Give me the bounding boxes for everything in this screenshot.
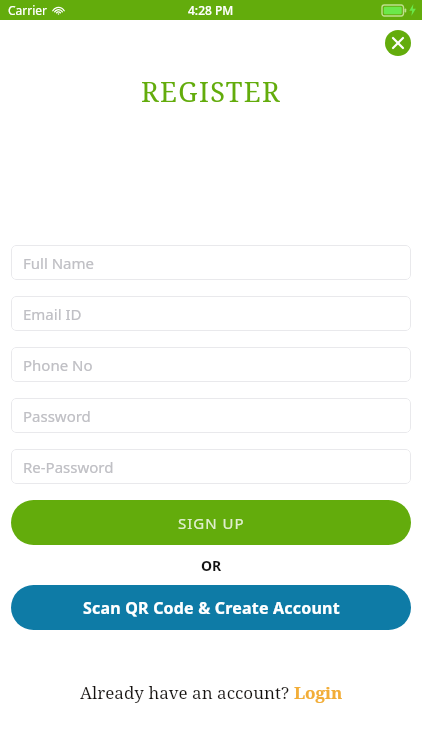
button[interactable]: Re-Password xyxy=(11,449,411,484)
staticText: Already have an account? xyxy=(80,681,294,704)
staticText: Full Name xyxy=(23,253,94,273)
button[interactable]: Email ID xyxy=(11,296,411,331)
staticText: REGISTER xyxy=(141,73,282,110)
staticText: SIGN UP xyxy=(178,513,245,533)
button[interactable]: Full Name xyxy=(11,245,411,280)
staticText: Login xyxy=(294,681,343,704)
staticText: Re-Password xyxy=(23,457,114,477)
button[interactable]: Password xyxy=(11,398,411,433)
staticText: Password xyxy=(23,406,91,426)
button[interactable]: SIGN UP xyxy=(11,500,411,545)
button[interactable]: Login xyxy=(294,681,343,704)
staticText: Carrier xyxy=(8,2,48,18)
button[interactable]: Phone No xyxy=(11,347,411,382)
staticText: Phone No xyxy=(23,355,93,375)
button[interactable]: Scan QR Code & Create Account xyxy=(11,585,411,630)
button[interactable]: Close xyxy=(385,30,411,56)
staticText: Email ID xyxy=(23,304,82,324)
staticText: Scan QR Code & Create Account xyxy=(83,597,340,619)
staticText: OR xyxy=(201,556,222,575)
staticText: 4:28 PM xyxy=(188,2,234,18)
